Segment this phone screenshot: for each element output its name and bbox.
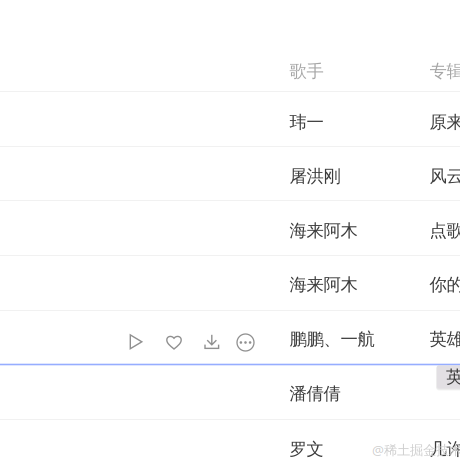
staticText: 海来阿木 [289, 220, 357, 241]
staticText: 你的 [429, 274, 460, 295]
staticText: 罗文 [289, 438, 323, 460]
staticText: 海来阿木 [289, 274, 357, 295]
staticText: 风云 [429, 165, 460, 187]
button[interactable]: Favorite [166, 334, 182, 350]
staticText: 点歌 [429, 220, 460, 241]
staticText: 潘倩倩 [289, 383, 340, 404]
button[interactable]: Download [204, 334, 220, 350]
staticText: 歌手 [289, 60, 323, 82]
staticText: 屠洪刚 [289, 165, 340, 187]
button[interactable]: 专辑 [429, 60, 460, 82]
button[interactable]: 玮一 [0, 92, 460, 146]
button[interactable]: 屠洪刚 [0, 147, 460, 201]
staticText: 英雄 [429, 328, 460, 350]
button[interactable]: 海来阿木 [0, 201, 460, 255]
button[interactable]: More options [237, 334, 254, 351]
button[interactable]: Play [129, 334, 143, 350]
staticText: @稀土掘金技术社区 [372, 441, 460, 459]
staticText: 专辑 [429, 60, 460, 82]
button[interactable]: 潘倩倩 [0, 365, 460, 419]
staticText: 玮一 [289, 111, 323, 133]
staticText: 原来 [429, 111, 460, 133]
staticText: 英 [446, 366, 460, 388]
button[interactable]: 罗文 [0, 420, 460, 460]
button[interactable]: 海来阿木 [0, 256, 460, 310]
staticText: 几许 [429, 438, 460, 460]
button[interactable]: 鹏鹏、一航 [0, 311, 460, 365]
staticText: 鹏鹏、一航 [289, 328, 374, 350]
button[interactable]: 歌手 [289, 60, 323, 82]
